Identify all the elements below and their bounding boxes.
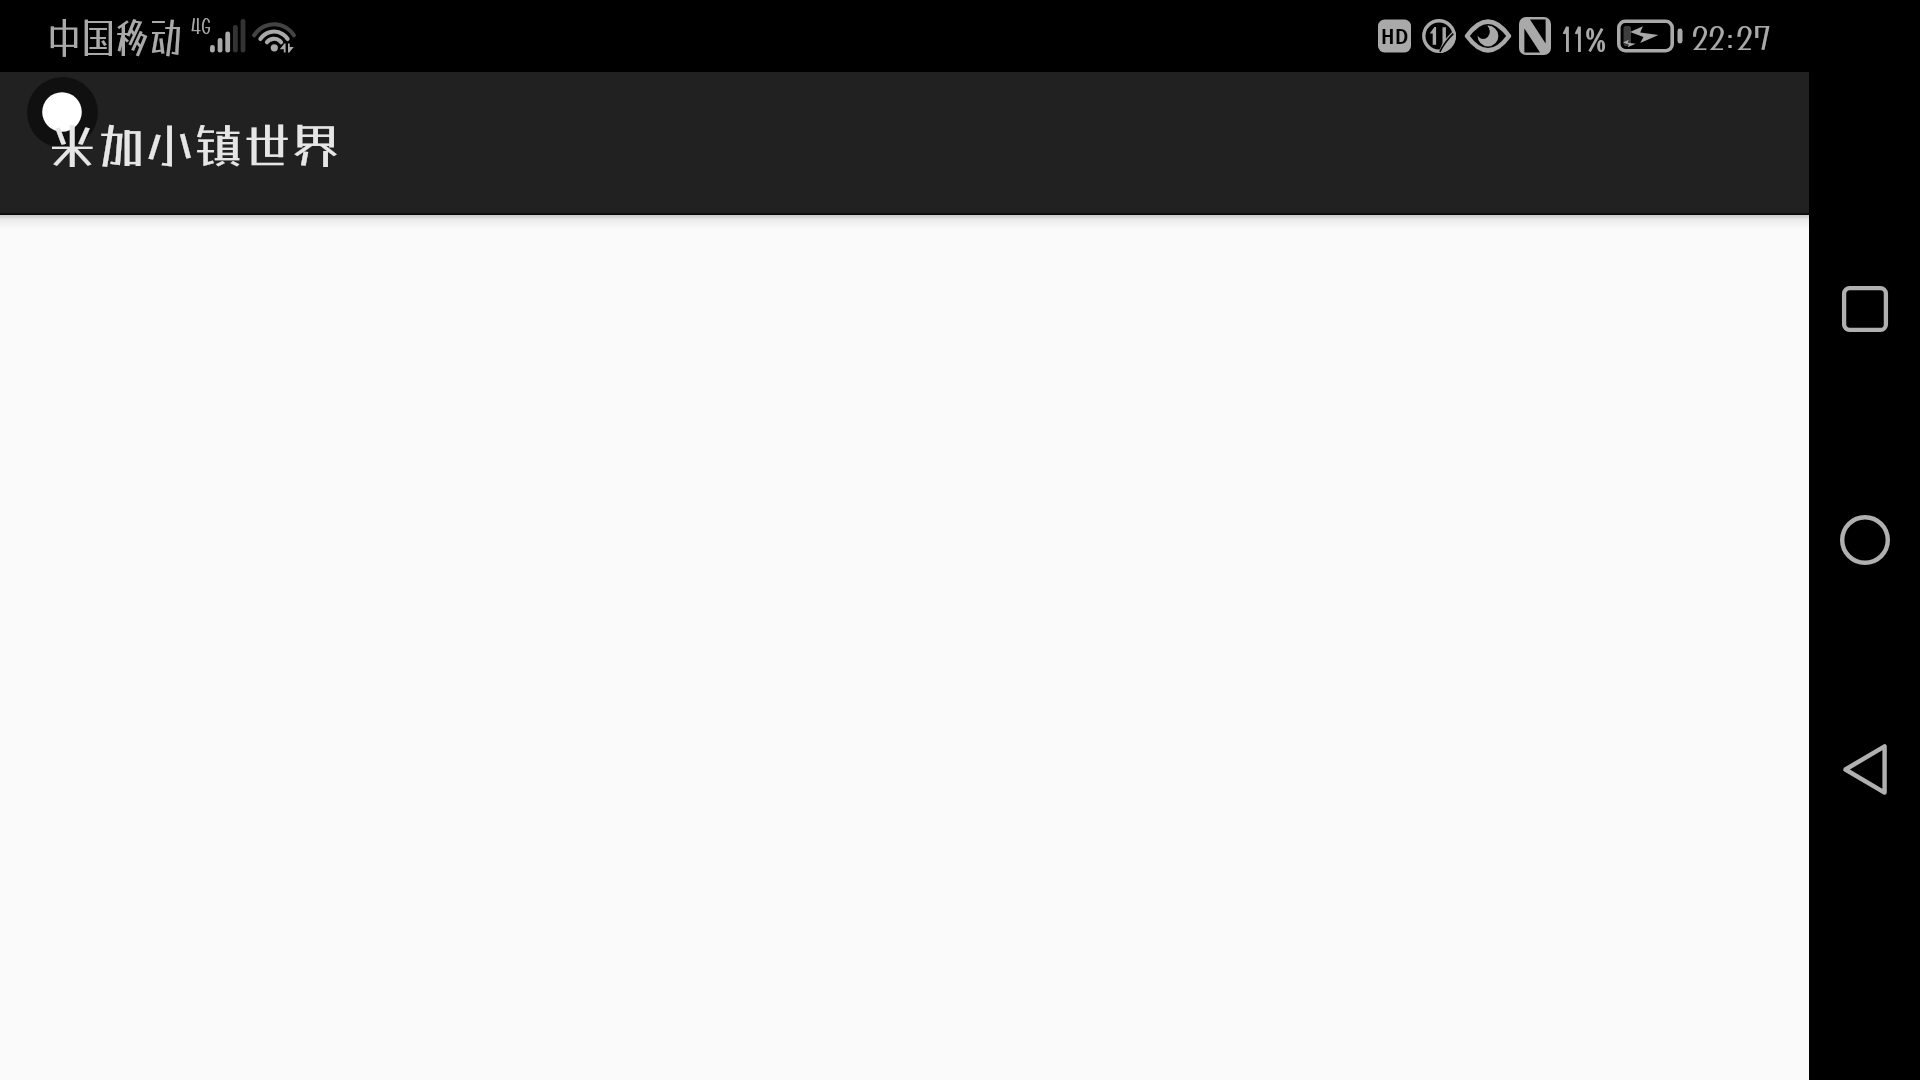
button[interactable]: Back [1809,707,1920,831]
button[interactable]: Home [1809,478,1920,602]
button[interactable]: App icon [27,77,98,148]
button[interactable]: Recent apps [1809,247,1920,371]
